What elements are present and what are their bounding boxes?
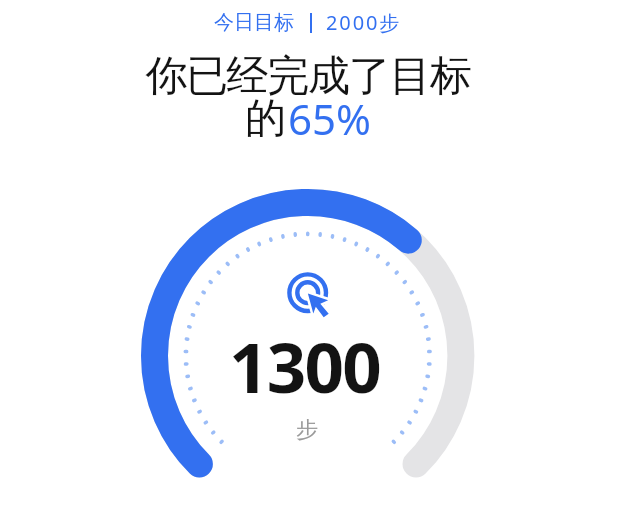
staticText: 你已经完成了目标 — [145, 50, 471, 103]
button[interactable]: Daily step goal target — [284, 269, 332, 317]
button[interactable]: 1300 — [201, 319, 409, 444]
staticText: 的 — [246, 93, 285, 145]
button[interactable]: 今日目标 — [202, 7, 414, 38]
staticText: 65% — [288, 90, 371, 147]
staticText: 2000步 — [326, 9, 402, 36]
staticText: 1300 — [229, 319, 381, 413]
staticText: 步 — [296, 416, 318, 444]
staticText: 今日目标 — [214, 10, 294, 35]
